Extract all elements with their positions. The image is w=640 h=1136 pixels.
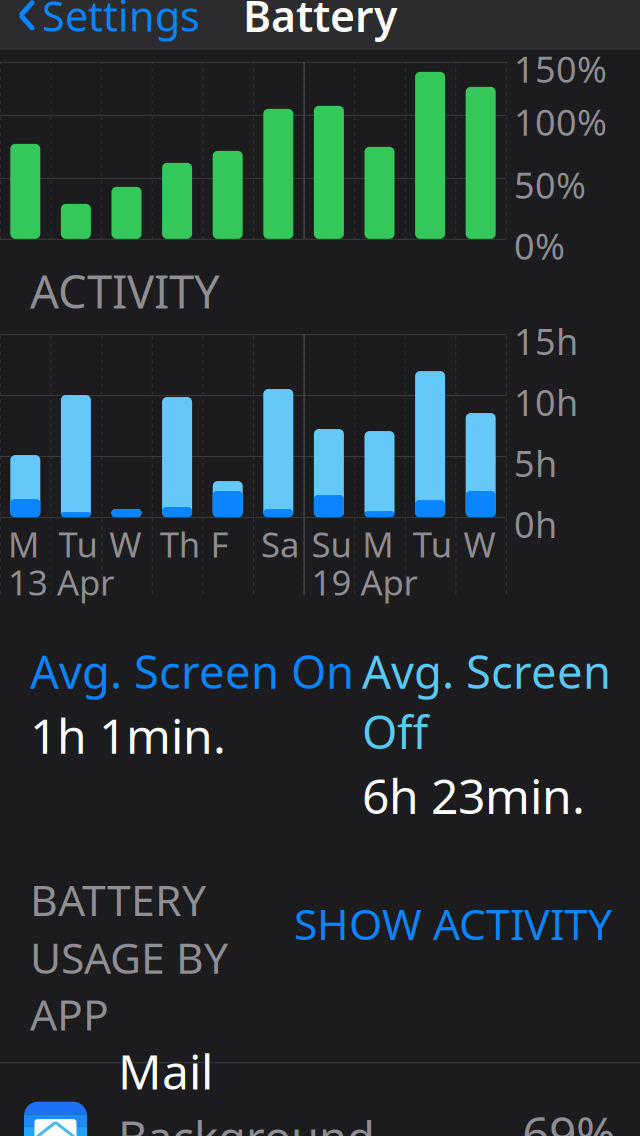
staticText: Sa — [261, 521, 299, 567]
staticText: 13 Apr — [8, 559, 114, 605]
staticText: 0h — [514, 500, 557, 548]
staticText: M — [8, 521, 39, 567]
staticText: 15h — [514, 317, 578, 365]
staticText: Th — [160, 521, 200, 567]
staticText: 69% — [522, 1101, 616, 1136]
staticText: 100% — [514, 98, 607, 146]
staticText: M — [362, 521, 393, 567]
staticText: Avg. Screen Off — [362, 641, 611, 761]
button[interactable]: Mail — [0, 1063, 640, 1136]
staticText: Background Activity — [118, 1107, 375, 1136]
button[interactable]: Settings — [0, 0, 200, 51]
staticText: 150% — [514, 45, 607, 93]
staticText: 6h 23min. — [362, 763, 585, 827]
staticText: 1h 1min. — [30, 703, 226, 767]
staticText: BATTERY — [30, 871, 206, 928]
staticText: Tu — [59, 521, 98, 567]
staticText: 19 Apr — [312, 559, 418, 605]
staticText: Tu — [413, 521, 452, 567]
staticText: Battery — [243, 0, 397, 44]
staticText: SHOW ACTIVITY — [294, 895, 612, 952]
staticText: Settings — [42, 0, 200, 43]
staticText: F — [210, 521, 228, 567]
staticText: 10h — [514, 378, 578, 426]
staticText: 5h — [514, 439, 557, 487]
staticText: Su — [312, 521, 352, 567]
staticText: Avg. Screen On — [30, 641, 354, 701]
staticText: W — [109, 521, 141, 567]
staticText: 0% — [514, 222, 565, 270]
staticText: Mail — [118, 1039, 213, 1103]
staticText: W — [463, 521, 495, 567]
staticText: 50% — [514, 161, 586, 209]
button[interactable]: SHOW ACTIVITY — [294, 871, 640, 960]
staticText: ACTIVITY — [30, 261, 220, 321]
staticText: USAGE BY APP — [30, 929, 228, 1042]
